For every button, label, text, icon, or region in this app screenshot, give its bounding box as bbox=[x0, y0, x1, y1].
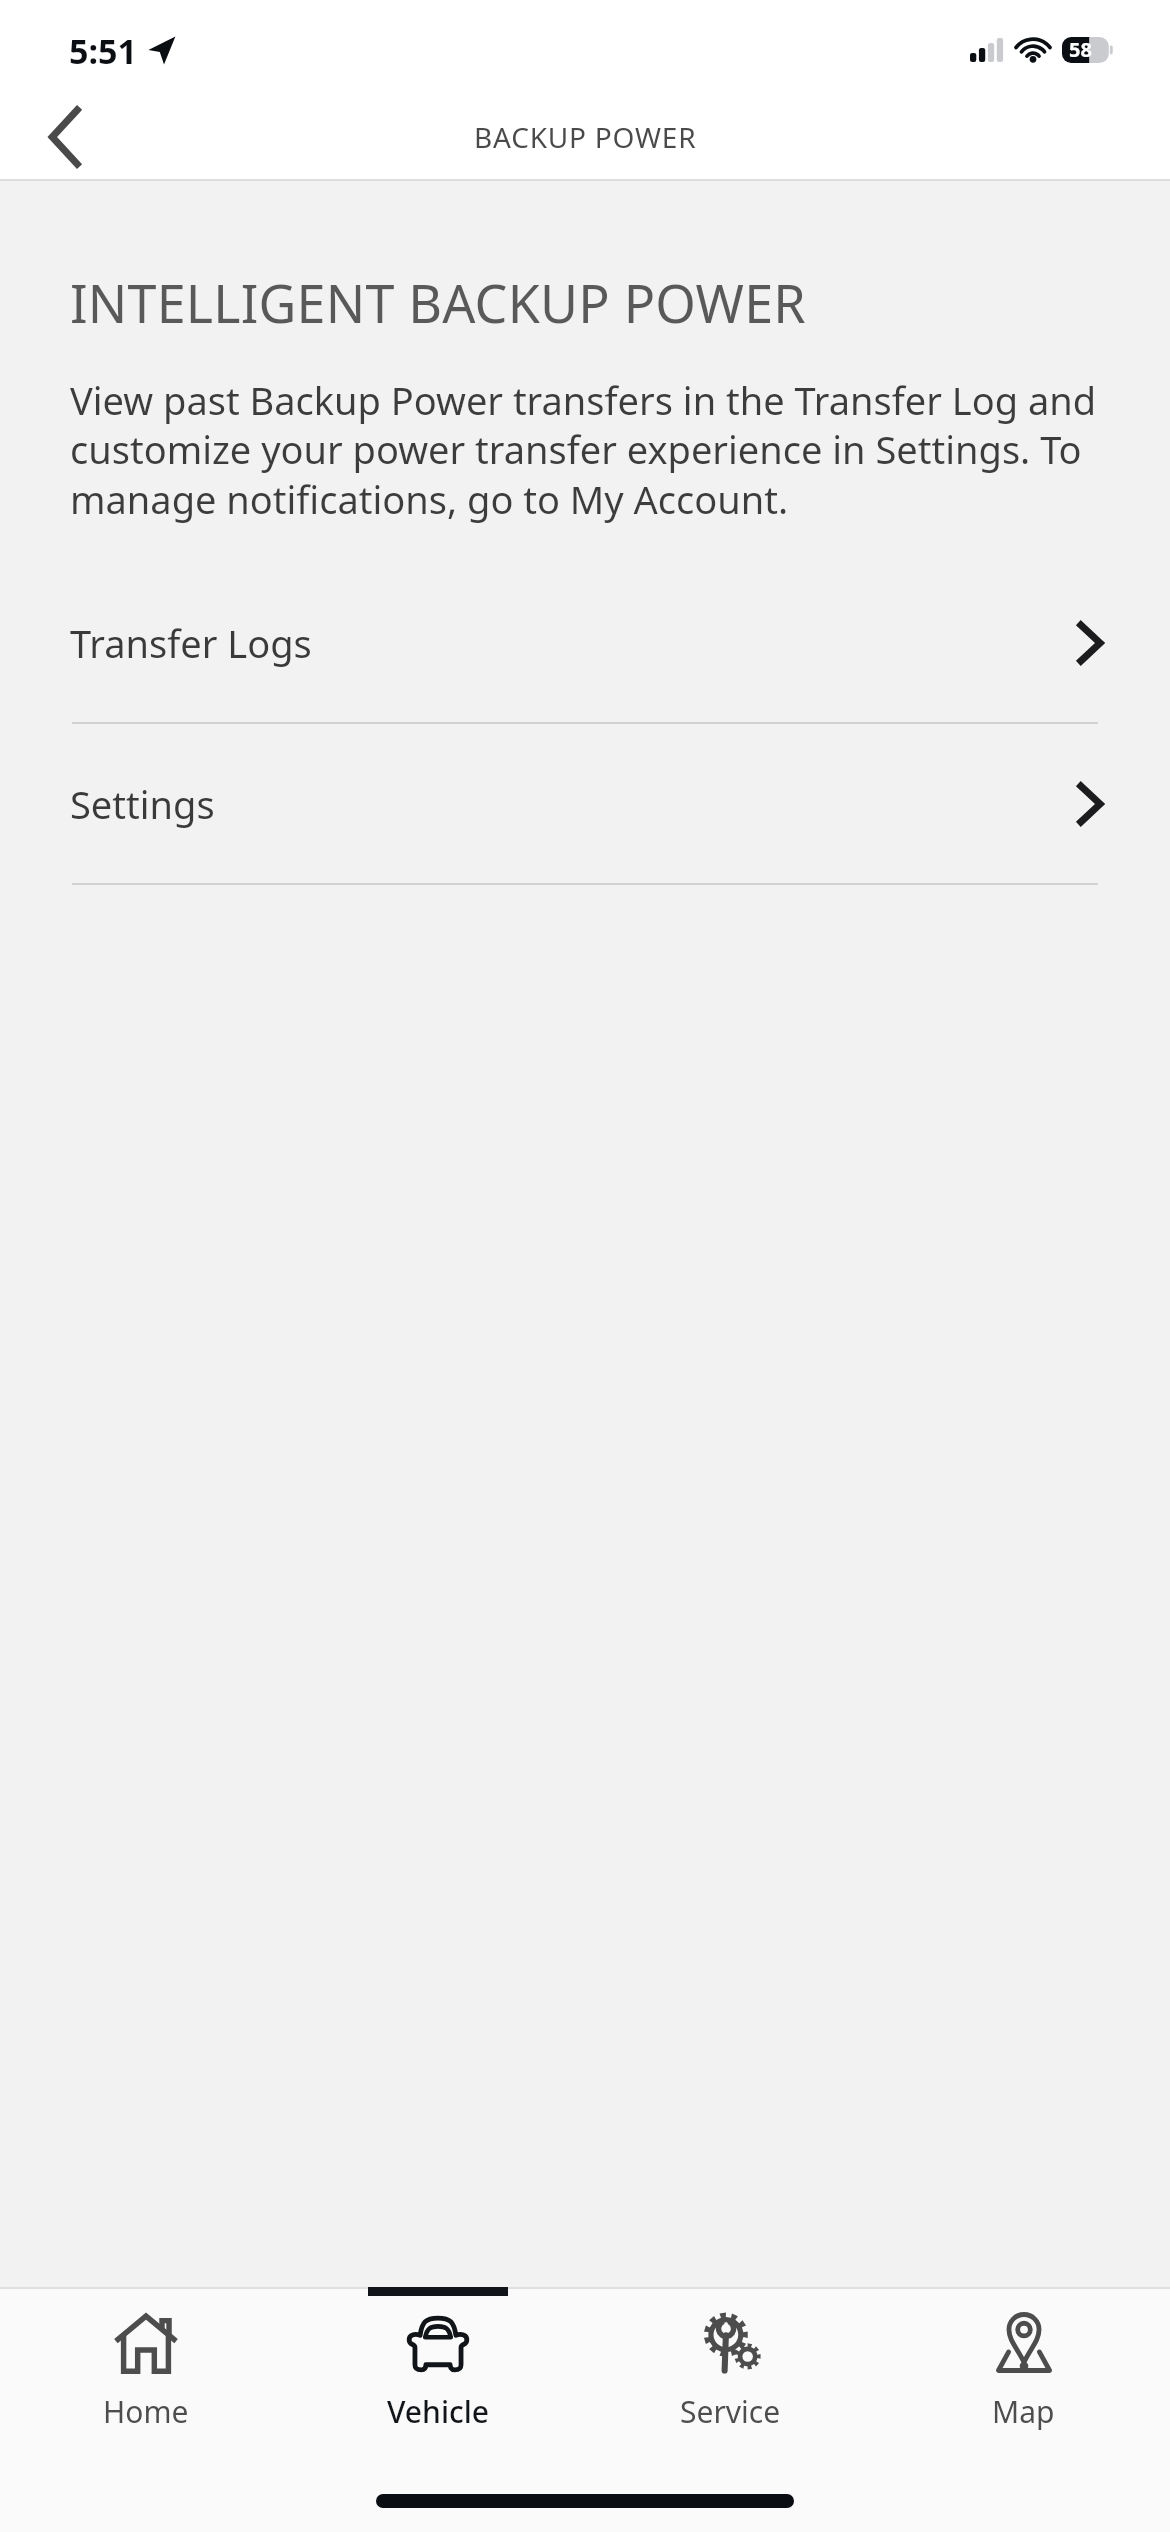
staticText: Home bbox=[103, 2391, 189, 2432]
button[interactable]: Home bbox=[0, 2287, 292, 2472]
staticText: 5:51 bbox=[69, 28, 137, 74]
staticText: Map bbox=[992, 2391, 1055, 2432]
button[interactable]: Transfer Logs bbox=[0, 563, 1170, 722]
staticText: Settings bbox=[70, 778, 1078, 830]
staticText: View past Backup Power transfers in the … bbox=[70, 374, 1108, 525]
staticText: 58 bbox=[1069, 36, 1092, 63]
button[interactable]: Settings bbox=[0, 724, 1170, 883]
button[interactable]: Vehicle bbox=[292, 2287, 584, 2472]
staticText: Service bbox=[680, 2391, 781, 2432]
button[interactable]: Map bbox=[877, 2287, 1170, 2472]
staticText: INTELLIGENT BACKUP POWER bbox=[70, 267, 806, 338]
button[interactable]: Back bbox=[28, 100, 102, 174]
staticText: Transfer Logs bbox=[70, 617, 1078, 669]
staticText: Vehicle bbox=[387, 2391, 490, 2432]
staticText: BACKUP POWER bbox=[474, 118, 697, 156]
button[interactable]: Service bbox=[584, 2287, 877, 2472]
